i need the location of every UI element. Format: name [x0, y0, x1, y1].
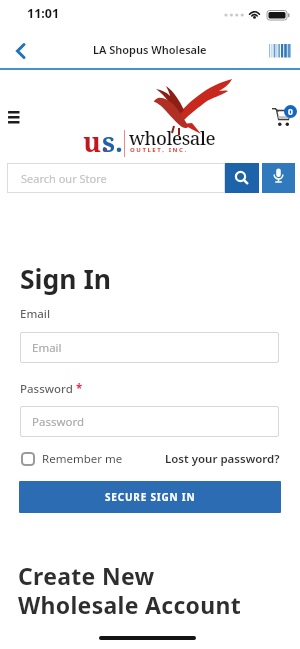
button[interactable]: Lost your password? — [165, 451, 280, 467]
staticText: * — [73, 381, 83, 397]
staticText: s. — [102, 123, 123, 160]
staticText: LA Shopus Wholesale — [93, 42, 207, 57]
staticText: Wholesale Account — [18, 589, 242, 620]
button[interactable] — [225, 163, 259, 193]
button[interactable] — [262, 163, 295, 193]
staticText: Create New — [18, 560, 155, 591]
staticText: 0 — [288, 106, 293, 118]
staticText: Sign In — [20, 261, 111, 297]
staticText: u. — [83, 123, 109, 160]
button[interactable] — [6, 108, 22, 126]
staticText: wholesale — [129, 125, 216, 150]
button[interactable] — [269, 44, 291, 58]
button[interactable]: 0 — [268, 100, 298, 130]
staticText: Password — [20, 381, 73, 397]
button[interactable] — [8, 42, 36, 68]
staticText: Email — [20, 306, 51, 322]
staticText: SECURE SIGN IN — [105, 490, 196, 504]
staticText: O U T L E T , I N C . — [130, 146, 187, 154]
button[interactable]: SECURE SIGN IN — [19, 481, 281, 513]
staticText: Search our Store — [21, 171, 107, 186]
button[interactable] — [21, 452, 35, 466]
staticText: 11:01 — [27, 5, 60, 22]
staticText: Email — [32, 340, 62, 356]
staticText: Password — [32, 414, 85, 430]
staticText: Remember me — [42, 451, 123, 467]
